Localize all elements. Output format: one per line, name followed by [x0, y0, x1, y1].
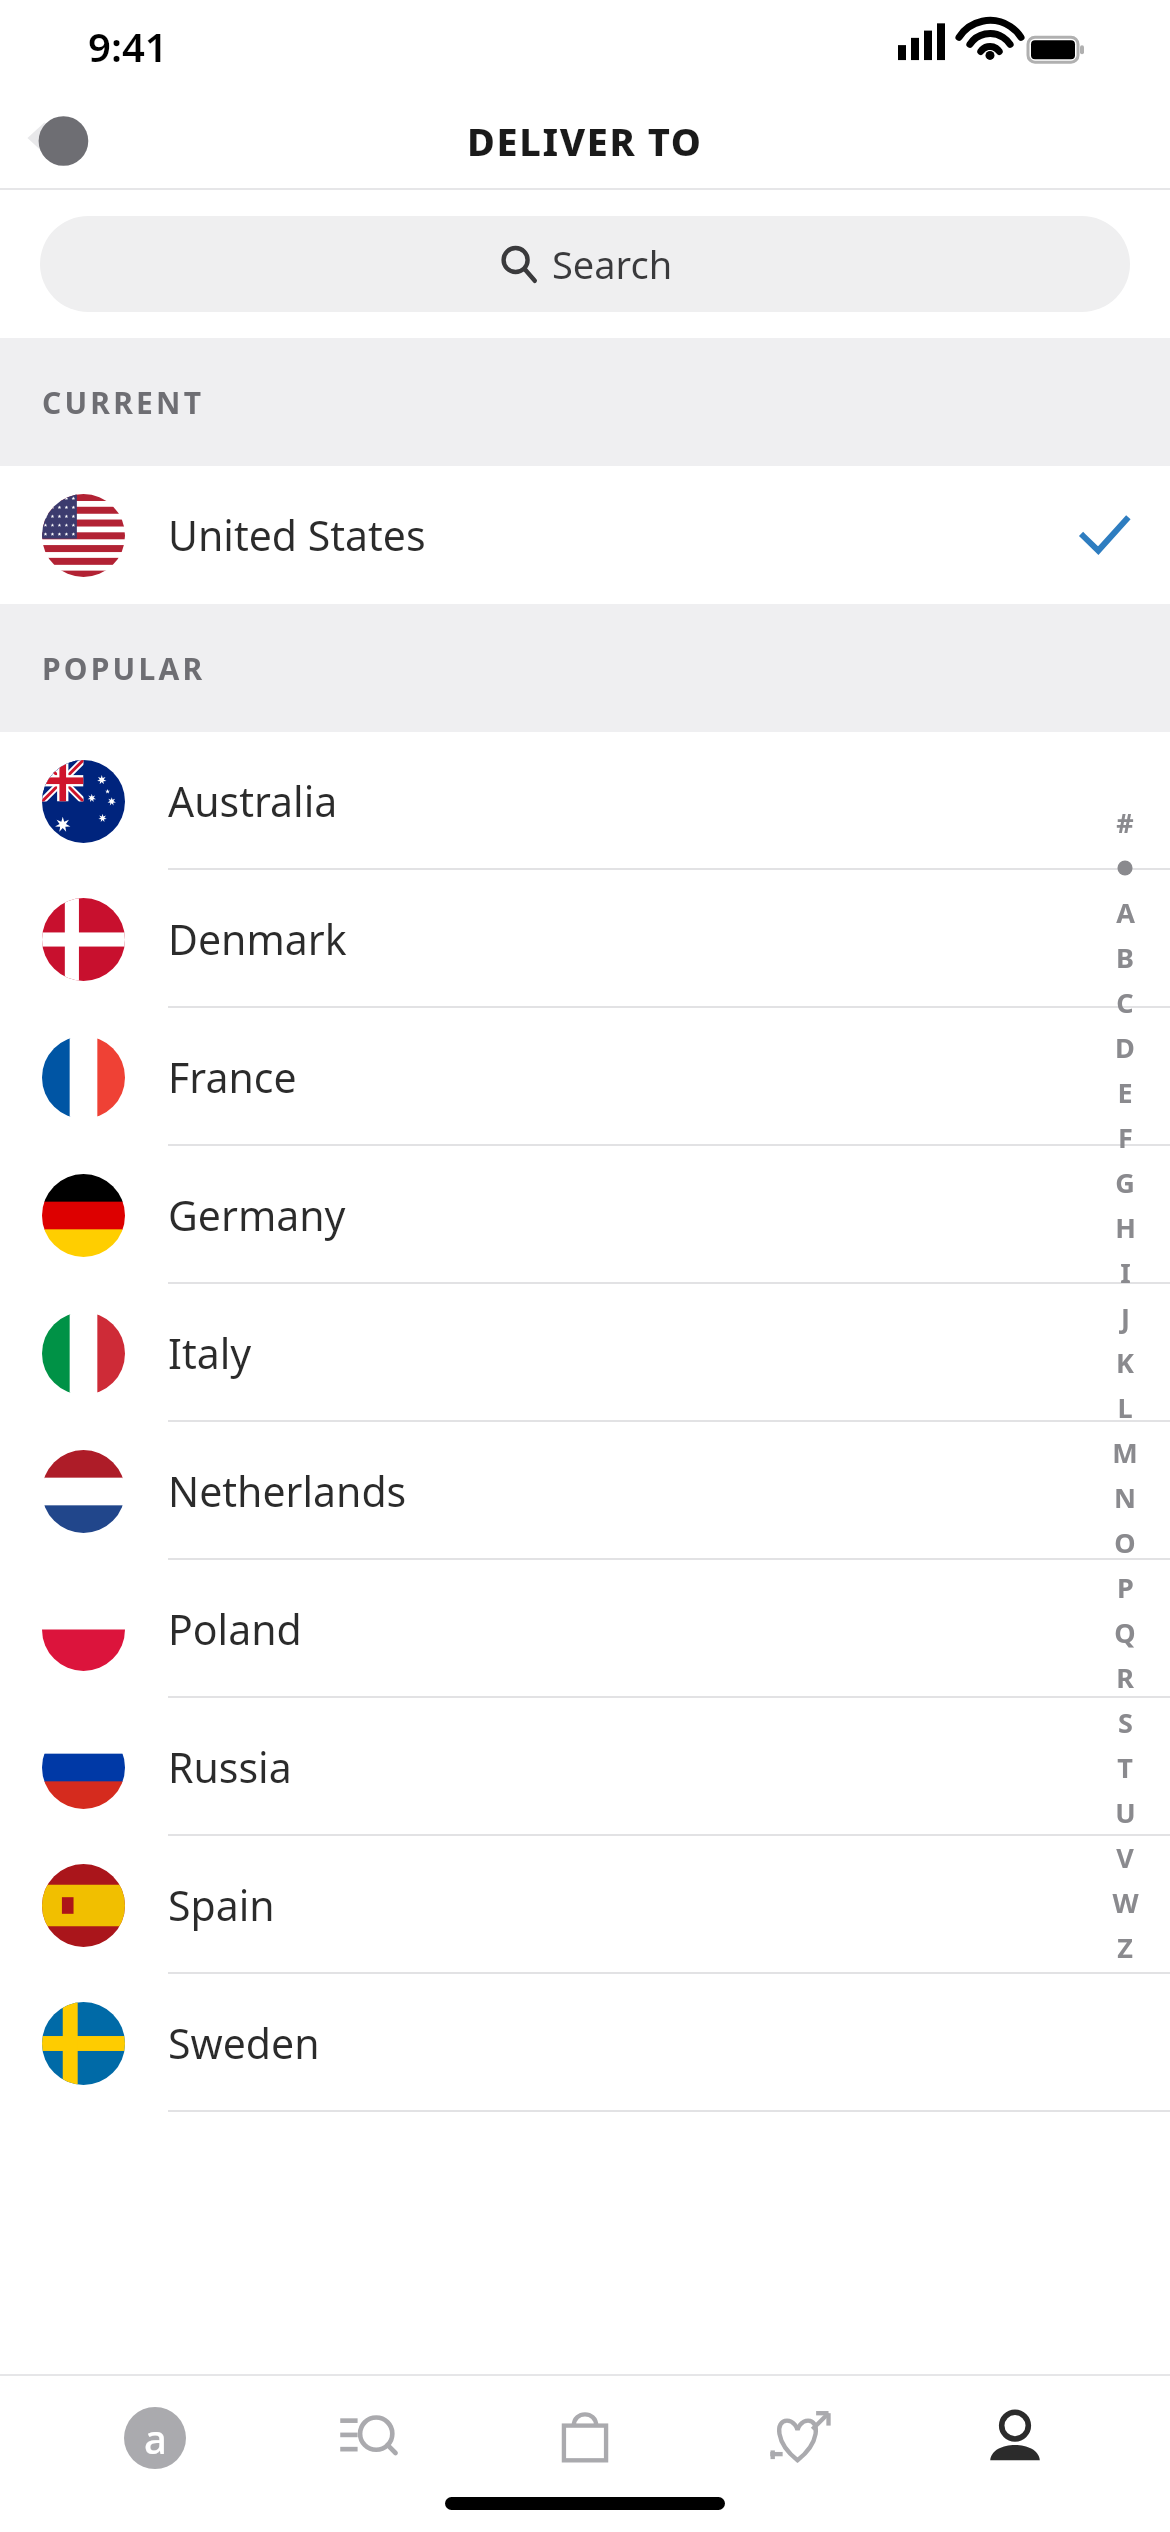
button[interactable]: Bag — [525, 2378, 645, 2498]
staticText: CURRENT — [42, 382, 205, 423]
staticText: F — [1118, 1119, 1133, 1156]
button[interactable]: Account — [955, 2378, 1075, 2498]
staticText: L — [1117, 1389, 1133, 1426]
button[interactable]: United States — [0, 466, 1170, 604]
staticText: France — [168, 1049, 297, 1105]
staticText: Netherlands — [168, 1463, 407, 1519]
button[interactable]: Poland — [0, 1560, 1170, 1698]
staticText: G — [1115, 1164, 1135, 1201]
button[interactable]: Alphabet index — [1102, 800, 1148, 1970]
staticText: T — [1117, 1749, 1133, 1786]
staticText: DELIVER TO — [467, 115, 703, 167]
button[interactable]: Denmark — [0, 870, 1170, 1008]
staticText: M — [1112, 1434, 1138, 1471]
button[interactable]: France — [0, 1008, 1170, 1146]
staticText: Poland — [168, 1601, 302, 1657]
staticText: Spain — [168, 1877, 275, 1933]
staticText: S — [1118, 1704, 1133, 1741]
staticText: 9:41 — [88, 19, 168, 73]
staticText: a — [144, 2411, 167, 2465]
staticText: # — [1116, 804, 1134, 841]
staticText: Italy — [168, 1325, 252, 1381]
staticText: C — [1116, 984, 1134, 1021]
button[interactable]: Spain — [0, 1836, 1170, 1974]
staticText: H — [1115, 1209, 1136, 1246]
button[interactable]: Browse — [310, 2378, 430, 2498]
staticText: V — [1116, 1839, 1134, 1876]
staticText: B — [1116, 939, 1134, 976]
staticText: K — [1116, 1344, 1134, 1381]
staticText: D — [1115, 1029, 1135, 1066]
staticText: E — [1117, 1074, 1133, 1111]
staticText: U — [1115, 1794, 1136, 1831]
button[interactable]: Home — [95, 2378, 215, 2498]
button[interactable]: Italy — [0, 1284, 1170, 1422]
button[interactable]: Back — [20, 99, 104, 183]
staticText: W — [1112, 1884, 1139, 1921]
button[interactable]: Favourites — [740, 2378, 860, 2498]
staticText: I — [1120, 1254, 1131, 1291]
staticText: Q — [1114, 1614, 1136, 1651]
staticText: J — [1121, 1299, 1130, 1336]
staticText: Sweden — [168, 2015, 320, 2071]
staticText: P — [1117, 1569, 1134, 1606]
staticText: R — [1116, 1659, 1134, 1696]
staticText: Australia — [168, 773, 338, 829]
button[interactable]: Netherlands — [0, 1422, 1170, 1560]
staticText: A — [1116, 894, 1135, 931]
staticText: Germany — [168, 1187, 346, 1243]
staticText: Z — [1117, 1929, 1133, 1966]
staticText: N — [1114, 1479, 1136, 1516]
staticText: United States — [168, 507, 426, 563]
button[interactable]: Germany — [0, 1146, 1170, 1284]
staticText: O — [1114, 1524, 1136, 1561]
button[interactable]: Australia — [0, 732, 1170, 870]
staticText: Search — [552, 238, 673, 290]
button[interactable]: Search — [40, 216, 1130, 312]
button[interactable]: Russia — [0, 1698, 1170, 1836]
staticText: POPULAR — [42, 648, 206, 689]
staticText: Denmark — [168, 911, 347, 967]
button[interactable]: Sweden — [0, 1974, 1170, 2112]
staticText: Russia — [168, 1739, 292, 1795]
